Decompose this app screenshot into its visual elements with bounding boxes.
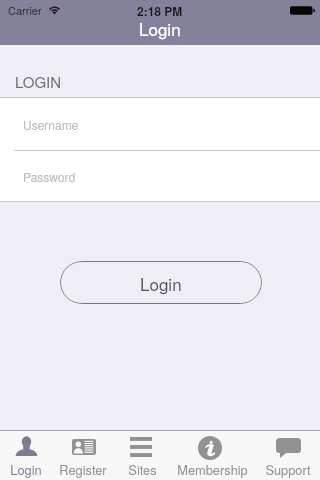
staticText: Support — [265, 460, 311, 478]
staticText: LOGIN — [15, 71, 62, 92]
button[interactable]: Support tab — [250, 431, 320, 480]
button[interactable]: Sites tab — [104, 431, 180, 480]
button[interactable]: Login — [60, 261, 262, 304]
button[interactable]: Register tab — [45, 431, 121, 480]
staticText: Register — [59, 460, 107, 478]
button[interactable]: Membership tab — [174, 431, 250, 480]
staticText: Carrier — [8, 2, 42, 18]
button[interactable]: Username — [0, 98, 320, 150]
staticText: Membership — [177, 460, 248, 478]
staticText: 2:18 PM — [137, 2, 183, 19]
staticText: Password — [23, 168, 76, 185]
button[interactable]: Password — [0, 151, 320, 201]
staticText: Login — [139, 16, 181, 40]
staticText: Login — [140, 271, 182, 295]
staticText: Login — [10, 460, 42, 478]
button[interactable]: Login tab — [0, 431, 64, 480]
staticText: Sites — [128, 460, 157, 478]
staticText: Username — [23, 116, 79, 133]
